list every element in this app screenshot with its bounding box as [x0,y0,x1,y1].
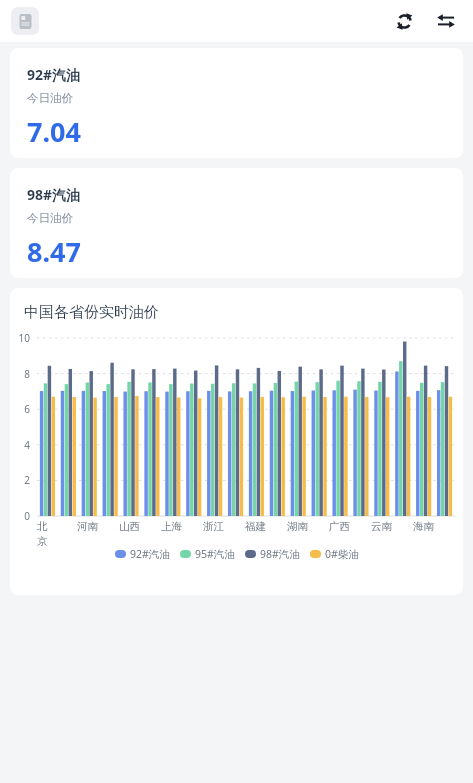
staticText: 6 [10,402,30,416]
button[interactable]: 98#汽油 [10,168,463,278]
button[interactable]: 98#汽油 [245,547,300,561]
staticText: 上海 [161,520,182,533]
staticText: 浙江 [203,520,224,533]
staticText: 95#汽油 [195,547,235,561]
staticText: 10 [10,331,30,345]
staticText: 湖南 [287,520,308,533]
staticText: 今日油价 [27,211,73,225]
staticText: 山西 [119,520,140,533]
staticText: 海南 [413,520,434,533]
button[interactable]: Refresh [389,6,419,36]
button[interactable]: 95#汽油 [180,547,235,561]
staticText: 今日油价 [27,91,73,105]
button[interactable]: Switch units [431,6,461,36]
staticText: 0 [10,509,30,523]
staticText: 0#柴油 [325,547,359,561]
staticText: 98#汽油 [27,185,81,204]
staticText: 92#汽油 [27,65,81,84]
staticText: 河南 [77,520,98,533]
staticText: 云南 [371,520,392,533]
button[interactable]: 0#柴油 [310,547,359,561]
button[interactable]: 92#汽油 [115,547,170,561]
staticText: 98#汽油 [260,547,300,561]
staticText: 2 [10,473,30,487]
staticText: 福建 [245,520,266,533]
staticText: 8.47 [27,233,81,270]
staticText: 7.04 [27,113,81,150]
staticText: 中国各省份实时油价 [24,303,159,322]
staticText: 北京 [37,520,57,548]
staticText: 8 [10,367,30,381]
staticText: 4 [10,438,30,452]
button[interactable]: 92#汽油 [10,48,463,158]
button[interactable]: Menu [11,7,39,35]
staticText: 广西 [329,520,350,533]
staticText: 92#汽油 [130,547,170,561]
